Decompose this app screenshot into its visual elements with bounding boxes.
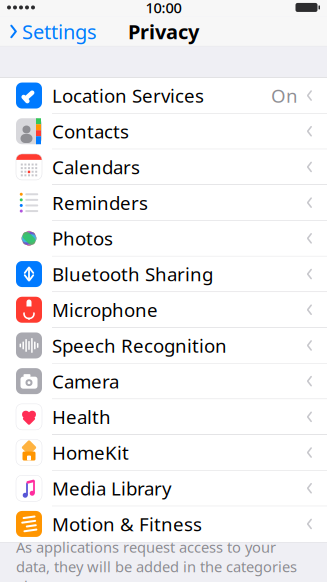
staticText: Photos (52, 226, 113, 251)
button[interactable]: Settings (0, 13, 97, 50)
button[interactable]: Reminders (0, 185, 327, 221)
button[interactable]: Location Services (0, 78, 327, 114)
button[interactable]: Bluetooth Sharing (0, 256, 327, 292)
staticText: Bluetooth Sharing (52, 262, 213, 286)
staticText: Settings (22, 18, 97, 45)
button[interactable]: Speech Recognition (0, 328, 327, 364)
button[interactable]: Contacts (0, 114, 327, 149)
staticText: 10:00 (145, 0, 181, 17)
staticText: Media Library (52, 476, 172, 501)
staticText: Microphone (52, 297, 158, 322)
button[interactable]: Microphone (0, 292, 327, 328)
button[interactable]: Media Library (0, 471, 327, 506)
button[interactable]: Calendars (0, 149, 327, 185)
staticText: Location Services (52, 83, 204, 108)
button[interactable]: Photos (0, 221, 327, 256)
button[interactable]: Camera (0, 364, 327, 399)
button[interactable]: HomeKit (0, 435, 327, 471)
staticText: Reminders (52, 190, 148, 215)
button[interactable]: Health (0, 399, 327, 435)
staticText: As applications request access to your d… (16, 537, 297, 582)
staticText: Privacy (128, 18, 199, 45)
staticText: Contacts (52, 119, 129, 144)
staticText: Camera (52, 369, 119, 394)
staticText: Motion & Fitness (52, 512, 202, 536)
staticText: Health (52, 404, 111, 429)
staticText: On (271, 83, 298, 108)
staticText: HomeKit (52, 440, 129, 465)
staticText: Speech Recognition (52, 333, 227, 358)
staticText: Calendars (52, 155, 140, 179)
button[interactable]: Motion & Fitness (0, 506, 327, 542)
